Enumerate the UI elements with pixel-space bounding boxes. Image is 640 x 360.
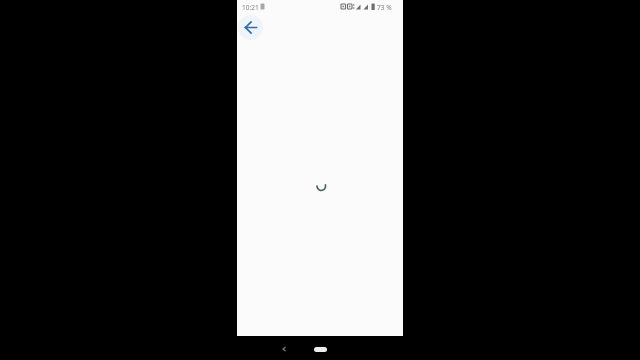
button[interactable] bbox=[276, 341, 292, 357]
staticText: 10:21 bbox=[242, 3, 259, 12]
button[interactable] bbox=[238, 15, 263, 40]
button[interactable] bbox=[314, 347, 327, 352]
staticText: 73 % bbox=[377, 3, 392, 12]
